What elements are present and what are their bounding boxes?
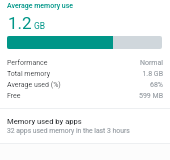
staticText: Performance <box>7 59 48 67</box>
button[interactable]: Memory used by apps <box>0 109 170 143</box>
staticText: 1.8 GB <box>142 70 163 78</box>
staticText: Average used (%) <box>7 81 61 89</box>
staticText: Memory used by apps <box>7 117 82 126</box>
staticText: Total memory <box>7 70 51 78</box>
staticText: Average memory use <box>7 2 74 10</box>
staticText: Free <box>7 92 21 100</box>
staticText: Normal <box>139 59 163 67</box>
staticText: 1.2 <box>8 13 32 33</box>
staticText: 599 MB <box>138 92 163 100</box>
staticText: 32 apps used memory in the last 3 hours <box>7 127 130 135</box>
staticText: GB <box>34 21 46 31</box>
staticText: 68% <box>150 81 163 89</box>
